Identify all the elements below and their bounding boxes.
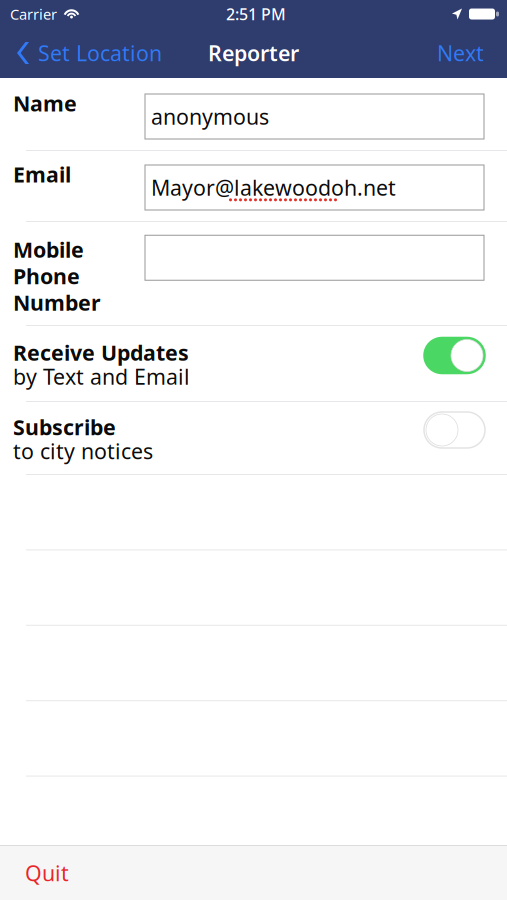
- staticText: Mayor@lakewoodoh.net: [151, 173, 396, 202]
- staticText: Name: [13, 89, 77, 117]
- staticText: Mobile: [13, 235, 84, 264]
- staticText: Next: [437, 39, 484, 67]
- staticText: by Text and Email: [13, 362, 190, 391]
- staticText: Phone: [13, 262, 80, 290]
- button[interactable]: Receive Updates: [0, 326, 507, 401]
- staticText: Email: [13, 160, 71, 188]
- staticText: Reporter: [208, 39, 299, 67]
- button[interactable]: Subscribe: [0, 402, 507, 474]
- staticText: Receive Updates: [13, 338, 189, 367]
- staticText: Subscribe: [13, 413, 116, 441]
- staticText: Number: [13, 288, 101, 317]
- staticText: Carrier: [10, 4, 57, 24]
- button[interactable]: Quit: [0, 846, 507, 900]
- staticText: Set Location: [38, 39, 162, 67]
- staticText: Quit: [25, 859, 69, 887]
- staticText: anonymous: [151, 102, 269, 131]
- button[interactable]: Next: [423, 28, 507, 78]
- staticText: 2:51 PM: [226, 3, 286, 25]
- button[interactable]: Set Location: [0, 28, 172, 78]
- staticText: to city notices: [13, 437, 153, 465]
